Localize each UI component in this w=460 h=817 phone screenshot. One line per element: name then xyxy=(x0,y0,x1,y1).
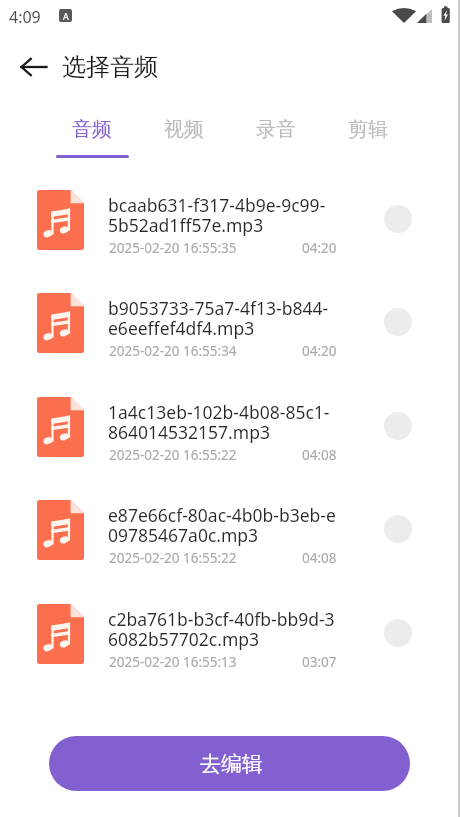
staticText: 04:08 xyxy=(302,446,337,464)
staticText: 04:20 xyxy=(302,342,337,360)
button[interactable]: 录音 xyxy=(230,105,322,153)
button[interactable]: e87e66cf-80ac-4b0b-b3eb-e 09785467a0c.mp… xyxy=(0,500,460,588)
button[interactable]: b9053733-75a7-4f13-b844- e6eeffef4df4.mp… xyxy=(0,293,460,381)
button[interactable]: Select audio file xyxy=(384,619,412,647)
button[interactable]: 视频 xyxy=(138,105,230,153)
staticText: 03:07 xyxy=(302,653,337,671)
staticText: 04:20 xyxy=(302,239,337,257)
button[interactable]: Select audio file xyxy=(384,412,412,440)
staticText: 4:09 xyxy=(9,6,41,28)
staticText: A xyxy=(63,10,69,22)
staticText: 04:08 xyxy=(302,549,337,567)
staticText: 2025-02-20 16:55:13 xyxy=(109,653,237,671)
staticText: 2025-02-20 16:55:35 xyxy=(109,239,237,257)
staticText: 剪辑 xyxy=(348,117,388,142)
staticText: 去编辑 xyxy=(200,751,263,777)
button[interactable]: Select audio file xyxy=(384,205,412,233)
staticText: 音频 xyxy=(72,117,112,142)
staticText: 2025-02-20 16:55:34 xyxy=(109,342,237,360)
staticText: 1a4c13eb-102b-4b08-85c1- 864014532157.mp… xyxy=(108,400,344,445)
button[interactable]: 剪辑 xyxy=(322,105,414,153)
staticText: 2025-02-20 16:55:22 xyxy=(109,549,237,567)
button[interactable]: c2ba761b-b3cf-40fb-bb9d-3 6082b57702c.mp… xyxy=(0,604,460,692)
staticText: 2025-02-20 16:55:22 xyxy=(109,446,237,464)
other: Wi-Fi xyxy=(394,7,414,23)
staticText: e87e66cf-80ac-4b0b-b3eb-e 09785467a0c.mp… xyxy=(108,503,344,548)
staticText: b9053733-75a7-4f13-b844- e6eeffef4df4.mp… xyxy=(108,296,344,341)
other: Mobile signal xyxy=(417,9,432,23)
button[interactable]: Select audio file xyxy=(384,515,412,543)
staticText: 视频 xyxy=(164,117,204,142)
staticText: bcaab631-f317-4b9e-9c99- 5b52ad1ff57e.mp… xyxy=(108,193,344,238)
button[interactable]: bcaab631-f317-4b9e-9c99- 5b52ad1ff57e.mp… xyxy=(0,190,460,278)
button[interactable]: 去编辑 xyxy=(49,736,410,791)
button[interactable]: 1a4c13eb-102b-4b08-85c1- 864014532157.mp… xyxy=(0,397,460,485)
button[interactable]: 音频 xyxy=(46,105,138,153)
button[interactable]: Back xyxy=(11,45,55,89)
staticText: 选择音频 xyxy=(62,52,158,82)
other: Battery charging xyxy=(441,6,451,23)
staticText: 录音 xyxy=(256,117,296,142)
button[interactable]: Select audio file xyxy=(384,308,412,336)
staticText: c2ba761b-b3cf-40fb-bb9d-3 6082b57702c.mp… xyxy=(108,607,344,652)
